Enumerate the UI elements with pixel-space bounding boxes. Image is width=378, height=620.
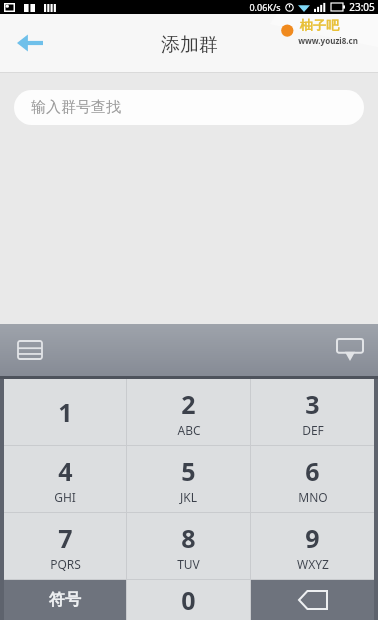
button[interactable]: 9 [251,513,374,579]
staticText: PQRS [50,556,81,572]
button[interactable]: 4 [4,446,126,512]
button[interactable]: Backspace [251,580,374,620]
button[interactable]: 5 [127,446,250,512]
button[interactable]: 8 [127,513,250,579]
staticText: 6 [305,454,320,488]
staticText: 8 [181,521,196,555]
staticText: www.youzi8.cn [298,35,358,46]
button[interactable]: 1 [4,379,126,445]
staticText: JKL [180,489,197,505]
staticText: 0 [181,583,196,617]
staticText: 9 [305,521,320,555]
button[interactable]: 3 [251,379,374,445]
staticText: 0.06K/s [249,1,281,13]
staticText: 5 [181,454,196,488]
button[interactable]: 7 [4,513,126,579]
staticText: 7 [58,521,73,555]
button[interactable]: Keyboard layout [10,330,50,370]
staticText: 添加群 [161,33,218,57]
staticText: GHI [54,489,76,505]
staticText: TUV [177,556,200,572]
button[interactable]: 6 [251,446,374,512]
button[interactable]: 2 [127,379,250,445]
button[interactable]: Back [8,21,52,65]
staticText: 柚子吧 [300,17,339,33]
staticText: 1 [58,395,73,429]
staticText: MNO [298,489,328,505]
button[interactable]: 输入群号查找 [14,90,364,125]
staticText: 23:05 [349,0,375,14]
staticText: 输入群号查找 [31,98,121,117]
staticText: ABC [177,422,201,438]
staticText: 4 [58,454,73,488]
button[interactable]: 符号 [4,580,126,620]
staticText: 3 [305,387,320,421]
staticText: 符号 [49,590,81,610]
staticText: DEF [302,422,324,438]
staticText: WXYZ [297,556,329,572]
button[interactable]: Hide keyboard [330,330,370,370]
staticText: 2 [181,387,196,421]
button[interactable]: 0 [127,580,250,620]
